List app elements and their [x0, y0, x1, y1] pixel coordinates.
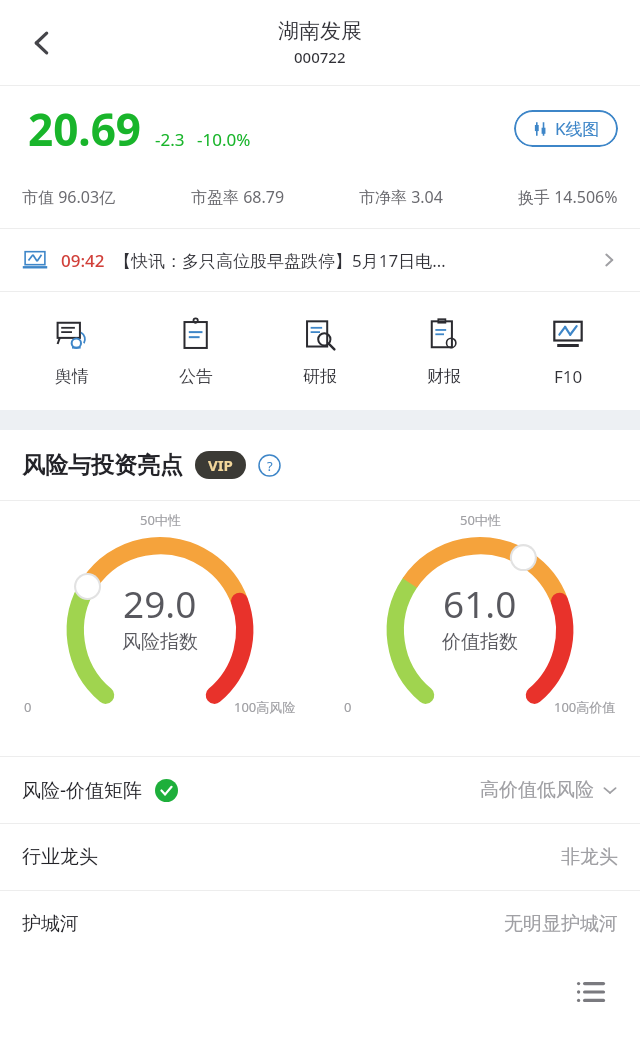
button[interactable]: 公告: [134, 292, 258, 410]
staticText: -10.0%: [197, 128, 251, 151]
staticText: -2.3: [155, 128, 185, 151]
staticText: 舆情: [55, 366, 89, 387]
staticText: 50中性: [140, 511, 181, 529]
button[interactable]: Help: [258, 454, 281, 477]
staticText: 财报: [427, 366, 461, 387]
staticText: 09:42: [61, 249, 105, 272]
button[interactable]: K线图: [514, 110, 618, 147]
button[interactable]: 09:42: [0, 229, 640, 291]
staticText: 风险与投资亮点: [22, 451, 183, 480]
staticText: 风险指数: [122, 630, 198, 654]
button[interactable]: 50中性: [320, 501, 640, 756]
button[interactable]: Back: [14, 15, 70, 71]
button[interactable]: 50中性: [0, 501, 320, 756]
button[interactable]: 护城河: [0, 891, 640, 957]
button[interactable]: 行业龙头: [0, 824, 640, 890]
staticText: 护城河: [22, 912, 79, 936]
staticText: 50中性: [460, 511, 501, 529]
staticText: 市值 96.03亿: [22, 186, 116, 208]
staticText: 0: [344, 698, 352, 716]
staticText: 61.0: [443, 578, 517, 628]
staticText: 价值指数: [442, 630, 518, 654]
staticText: 湖南发展: [278, 18, 362, 44]
staticText: ?: [267, 457, 273, 475]
staticText: 100高风险: [234, 698, 296, 716]
button[interactable]: 研报: [258, 292, 382, 410]
staticText: 高价值低风险: [480, 778, 594, 802]
staticText: 100高价值: [554, 698, 616, 716]
staticText: 29.0: [123, 578, 197, 628]
staticText: K线图: [555, 117, 600, 140]
button[interactable]: F10: [506, 292, 630, 410]
staticText: 行业龙头: [22, 845, 98, 869]
staticText: 换手 14.506%: [518, 186, 618, 208]
button[interactable]: 舆情: [10, 292, 134, 410]
staticText: F10: [554, 365, 583, 388]
staticText: 【快讯：多只高位股早盘跌停】5月17日电…: [114, 249, 600, 272]
staticText: 研报: [303, 366, 337, 387]
staticText: 非龙头: [561, 845, 618, 869]
staticText: 市盈率 68.79: [191, 186, 285, 208]
button[interactable]: 财报: [382, 292, 506, 410]
staticText: 公告: [179, 366, 213, 387]
staticText: 0: [24, 698, 32, 716]
staticText: 20.69: [28, 99, 142, 159]
staticText: 风险-价值矩阵: [22, 777, 143, 803]
button[interactable]: 目录: [558, 960, 622, 1024]
staticText: 000722: [294, 47, 346, 67]
staticText: 无明显护城河: [504, 912, 618, 936]
staticText: VIP: [208, 455, 233, 475]
staticText: 市净率 3.04: [359, 186, 443, 208]
button[interactable]: 风险-价值矩阵: [0, 757, 640, 823]
